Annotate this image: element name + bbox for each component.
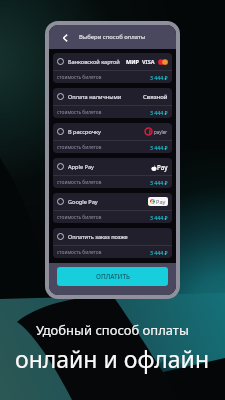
staticText: МИР [126, 58, 139, 65]
button[interactable]: Apple Pay [53, 158, 172, 188]
staticText: Google Pay [68, 198, 98, 206]
staticText: стоимость билетов [57, 74, 102, 81]
staticText: Банковской картой [68, 58, 120, 66]
staticText: стоимость билетов [57, 214, 102, 221]
button[interactable]: Google Pay [53, 193, 172, 223]
staticText: 3 444 ₽ [150, 74, 168, 81]
staticText: стоимость билетов [57, 109, 102, 116]
staticText: Pay [156, 198, 166, 206]
staticText: VISA [142, 58, 155, 65]
staticText: ОПЛАТИТЬ [96, 272, 130, 281]
staticText: 3 444 ₽ [150, 109, 168, 116]
button[interactable]: Банковской картой [53, 53, 172, 83]
staticText: Оплатить заказ позже [68, 233, 128, 241]
button[interactable]: ОПЛАТИТЬ [57, 267, 168, 286]
staticText: стоимость билетов [57, 179, 102, 186]
staticText: Связной [143, 93, 168, 101]
staticText: 3 444 ₽ [150, 249, 168, 256]
staticText: стоимость билетов [57, 249, 102, 256]
staticText: Apple Pay [68, 163, 94, 171]
staticText: В рассрочку [68, 128, 101, 136]
staticText: 3 444 ₽ [150, 214, 168, 221]
staticText: онлайн и офлайн [15, 343, 210, 374]
staticText: Удобный способ оплаты [36, 321, 189, 339]
staticText: Выбери способ оплаты [79, 33, 146, 41]
staticText: стоимость билетов [57, 144, 102, 151]
button[interactable]: Оплата наличными [53, 88, 172, 118]
staticText: payler [154, 129, 168, 135]
staticText: Pay [157, 163, 168, 171]
button[interactable]: В рассрочку [53, 123, 172, 153]
button[interactable]: Оплатить заказ позже [53, 228, 172, 258]
staticText: Оплата наличными [68, 93, 122, 101]
staticText: 3 444 ₽ [150, 144, 168, 151]
button[interactable]: Back [57, 31, 70, 44]
staticText: 3 444 ₽ [150, 179, 168, 186]
